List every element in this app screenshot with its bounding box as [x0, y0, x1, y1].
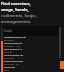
staticText: rudiments, loops, [1, 13, 37, 19]
staticText: Paradiddle warm up [4, 36, 26, 39]
button[interactable]: Funk groove in 4 [4, 48, 64, 54]
button[interactable]: Double stroke roll [4, 54, 64, 60]
staticText: Swiss army triplet [4, 60, 24, 63]
button[interactable]: Swiss army triplet [4, 60, 64, 66]
staticText: Linear fills [4, 66, 16, 69]
staticText: Single stroke roll [4, 42, 22, 45]
staticText: Search [4, 29, 13, 33]
staticText: Find exercises, [1, 1, 31, 7]
staticText: songs, bands, [1, 7, 29, 13]
button[interactable]: Single stroke roll [4, 42, 64, 48]
staticText: Rudiment · 90 [4, 63, 19, 66]
button[interactable]: Paradiddle warm up [4, 36, 64, 42]
staticText: Loop [4, 69, 9, 72]
staticText: Rudiment [4, 39, 14, 42]
staticText: Funk groove in 4 [4, 48, 22, 51]
button[interactable]: Linear fills [4, 66, 64, 72]
button[interactable]: Search [2, 26, 61, 36]
staticText: Double stroke roll [4, 54, 24, 57]
staticText: arrangements. [1, 19, 32, 25]
staticText: Rudiment · 120 [4, 45, 20, 48]
staticText: Exercise [4, 51, 12, 54]
staticText: Rudiment [4, 57, 14, 60]
